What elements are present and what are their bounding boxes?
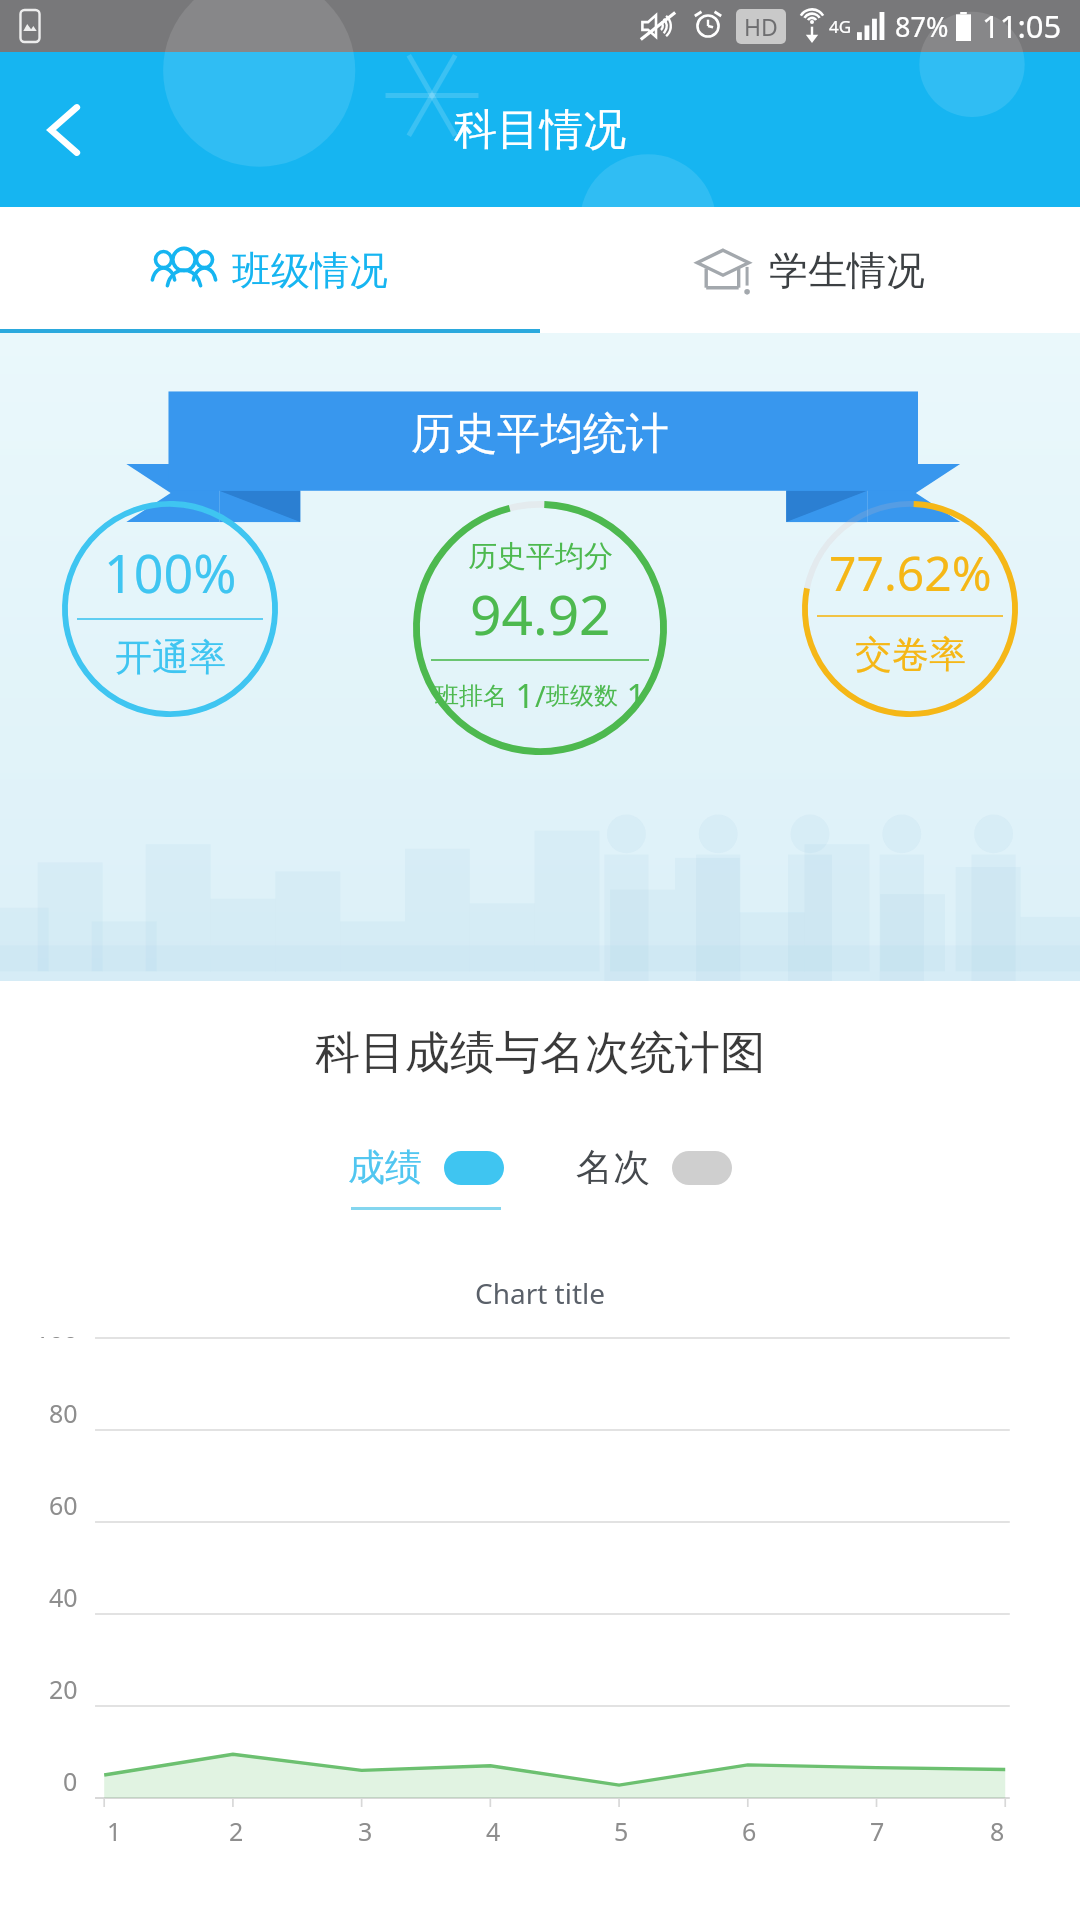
staticText: 5 [614, 1814, 629, 1848]
staticText: / [535, 676, 546, 715]
button[interactable]: 成绩 [348, 1144, 504, 1210]
staticText: 科目成绩与名次统计图 [0, 1025, 1080, 1082]
staticText: 7 [870, 1814, 885, 1848]
staticText: 班级数 [546, 681, 618, 711]
staticText: 4 [486, 1814, 501, 1848]
staticText: 交卷率 [855, 631, 966, 678]
staticText: 班排名 [435, 681, 507, 711]
staticText: 4G [829, 15, 852, 38]
button[interactable]: 班级情况 [0, 207, 540, 333]
staticText: 77.62% [829, 540, 992, 605]
staticText: 94.92 [470, 576, 611, 651]
staticText: 2 [229, 1814, 244, 1848]
staticText: 开通率 [115, 634, 226, 681]
staticText: 班级情况 [232, 246, 388, 295]
button[interactable]: Back [0, 52, 130, 207]
staticText: 0 [63, 1764, 78, 1798]
staticText: 60 [49, 1488, 78, 1522]
staticText: 87% [895, 8, 949, 45]
staticText: 学生情况 [769, 246, 925, 295]
staticText: HD [744, 11, 778, 42]
staticText: 20 [49, 1672, 78, 1706]
staticText: 1 [507, 673, 535, 718]
staticText: 名次 [576, 1144, 650, 1191]
staticText: 科目情况 [454, 103, 626, 157]
staticText: 3 [358, 1814, 373, 1848]
staticText: 6 [742, 1814, 757, 1848]
staticText: 1 [107, 1814, 122, 1848]
staticText: 8 [990, 1814, 1005, 1848]
staticText: 历史平均分 [468, 538, 613, 575]
button[interactable]: 名次 [576, 1144, 732, 1210]
staticText: 历史平均统计 [411, 407, 669, 461]
staticText: 100 [35, 1328, 78, 1338]
staticText: 1 [618, 673, 646, 718]
staticText: 11:05 [982, 5, 1062, 47]
staticText: 40 [49, 1580, 78, 1614]
staticText: 100% [104, 537, 237, 608]
staticText: 成绩 [348, 1144, 422, 1191]
staticText: 80 [49, 1396, 78, 1430]
button[interactable]: 学生情况 [540, 207, 1080, 333]
staticText: Chart title [0, 1274, 1080, 1312]
